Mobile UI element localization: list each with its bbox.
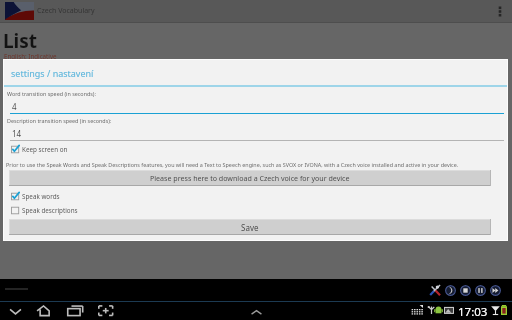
button[interactable]: More options [488, 0, 512, 22]
button[interactable]: Status [406, 301, 506, 320]
staticText: Please press here to download a Czech vo… [150, 173, 350, 183]
button[interactable]: Screenshot [95, 302, 116, 319]
button[interactable]: Recent apps [64, 302, 86, 319]
button[interactable]: Speak descriptions [11, 206, 78, 215]
button[interactable]: Pause [475, 285, 486, 296]
button[interactable]: Save [9, 219, 491, 235]
button[interactable]: Keep screen on [11, 145, 68, 154]
button[interactable]: Please press here to download a Czech vo… [9, 170, 491, 186]
button[interactable]: Tools [429, 284, 441, 296]
staticText: settings / nastavení [11, 67, 94, 79]
staticText: List [3, 28, 38, 54]
staticText: Speak descriptions [22, 206, 78, 215]
staticText: Word transition speed (in seconds): [7, 90, 96, 97]
staticText: Prior to use the Speak Words and Speak D… [6, 161, 501, 168]
button[interactable]: Night mode [445, 285, 456, 296]
button[interactable]: Home [33, 302, 50, 319]
staticText: Save [241, 222, 259, 233]
button[interactable]: Speak words [11, 192, 60, 201]
staticText: Speak words [22, 192, 60, 201]
staticText: 14 [12, 128, 22, 139]
staticText: Description transition speed (in seconds… [7, 117, 112, 124]
staticText: Czech Vocabulary [37, 6, 95, 16]
staticText: Keep screen on [22, 145, 68, 154]
button[interactable]: Stop [460, 285, 471, 296]
staticText: 17:03 [458, 304, 488, 320]
staticText: English: Indicative [4, 52, 57, 60]
button[interactable]: Back [7, 302, 24, 319]
button[interactable]: Expand status bar [247, 303, 265, 320]
button[interactable]: Fast forward [490, 285, 501, 296]
staticText: 4 [12, 101, 17, 112]
